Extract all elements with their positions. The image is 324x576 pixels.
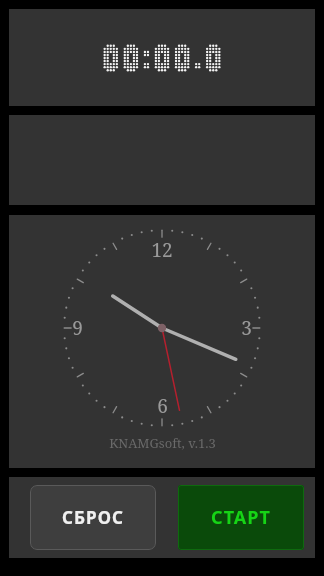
staticText: СТАРТ [211,505,271,530]
staticText: 9 [72,315,83,341]
staticText: СБРОС [62,506,124,529]
button[interactable]: СБРОС [30,485,156,550]
staticText: 3 [241,315,252,341]
staticText: 6 [157,393,168,419]
staticText: 12 [151,237,173,263]
staticText: KNAMGsoft, v.1.3 [109,434,216,452]
button[interactable]: СТАРТ [178,485,304,550]
